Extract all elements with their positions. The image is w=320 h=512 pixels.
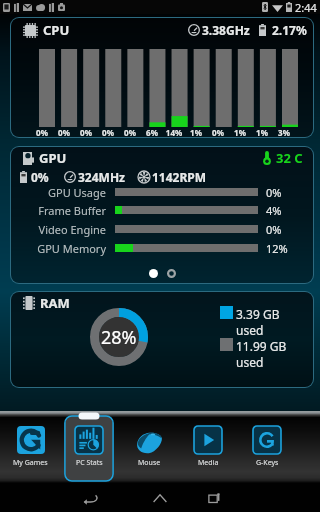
staticText: 1% <box>185 127 207 137</box>
staticText: 32 C <box>276 149 303 167</box>
staticText: 1% <box>229 127 251 137</box>
staticText: 0% <box>97 127 119 137</box>
staticText: 14% <box>163 127 185 137</box>
staticText: Frame Buffer <box>11 203 106 218</box>
staticText: 0% <box>266 222 296 237</box>
staticText: 6% <box>141 127 163 137</box>
button[interactable]: Mouse <box>124 415 174 482</box>
staticText: 1142RPM <box>152 169 207 185</box>
staticText: 4% <box>266 203 296 218</box>
button[interactable]: Media <box>183 415 233 482</box>
staticText: Video Engine <box>11 222 106 237</box>
staticText: 11.99 GB <box>236 338 287 354</box>
staticText: 0% <box>31 127 53 137</box>
button[interactable]: RAM <box>11 292 313 387</box>
button[interactable]: Recents <box>206 490 222 506</box>
button[interactable]: My Games <box>5 415 55 482</box>
staticText: 2:44 <box>295 0 317 14</box>
button[interactable]: Back <box>80 488 100 508</box>
staticText: RAM <box>40 294 70 312</box>
staticText: 3.39 GB <box>236 306 280 322</box>
staticText: Media <box>198 458 219 468</box>
staticText: 0% <box>266 185 296 200</box>
staticText: used <box>236 354 264 370</box>
staticText: 12% <box>266 241 296 256</box>
button[interactable]: CPU <box>11 18 313 137</box>
staticText: 0% <box>75 127 97 137</box>
staticText: 0% <box>119 127 141 137</box>
staticText: 0% <box>31 169 49 185</box>
staticText: 0% <box>53 127 75 137</box>
staticText: G-Keys <box>256 458 279 468</box>
staticText: Mouse <box>138 458 161 468</box>
staticText: 3.38GHz <box>202 22 250 38</box>
staticText: 1% <box>251 127 273 137</box>
staticText: 324MHz <box>78 169 126 185</box>
staticText: CPU <box>43 21 70 39</box>
button[interactable]: GPU <box>11 147 313 283</box>
staticText: 28% <box>101 325 137 350</box>
staticText: My Games <box>13 458 48 468</box>
staticText: 3% <box>273 127 295 137</box>
staticText: GPU <box>39 149 67 167</box>
staticText: PC Stats <box>76 458 103 468</box>
staticText: 2.17% <box>272 22 307 38</box>
button[interactable]: Home <box>150 488 170 508</box>
staticText: used <box>236 322 264 338</box>
button[interactable]: G-Keys <box>242 415 292 482</box>
button[interactable]: PC Stats <box>64 415 114 482</box>
staticText: GPU Usage <box>11 185 106 200</box>
staticText: 0% <box>207 127 229 137</box>
staticText: GPU Memory <box>11 241 106 256</box>
